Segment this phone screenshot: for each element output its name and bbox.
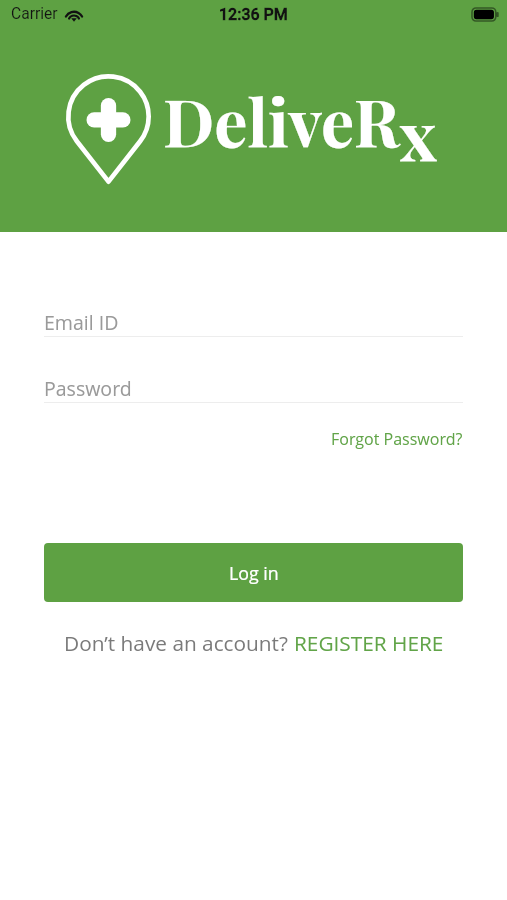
button[interactable]: Forgot Password? <box>331 428 463 450</box>
other: DeliveRx logo <box>66 74 151 184</box>
staticText: Log in <box>229 561 279 585</box>
button[interactable]: Log in <box>44 543 463 602</box>
button[interactable]: Email ID <box>44 309 463 337</box>
staticText: DeliveRx <box>163 76 437 180</box>
staticText: Email ID <box>44 309 119 336</box>
staticText: 12:36 PM <box>219 5 288 24</box>
staticText: Don’t have an account? <box>64 629 294 657</box>
button[interactable]: Password <box>44 375 463 403</box>
staticText: Password <box>44 375 132 402</box>
staticText: Carrier <box>11 5 58 23</box>
button[interactable]: REGISTER HERE <box>294 629 444 657</box>
